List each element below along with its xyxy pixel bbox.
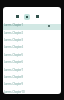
button[interactable]: Lorem - Chapter 2: [3, 29, 61, 36]
staticText: Lorem - Chapter 1: [4, 23, 23, 27]
staticText: Lorem - Chapter 5: [4, 53, 23, 57]
button[interactable]: Lorem - Chapter 6: [3, 58, 61, 65]
staticText: Lorem - Chapter 6: [4, 60, 23, 64]
button[interactable]: Lorem - Chapter 10: [3, 88, 61, 94]
staticText: Lorem - Chapter 9: [4, 82, 23, 86]
staticText: Lorem - Chapter 7: [4, 68, 23, 72]
button[interactable]: Books: [24, 14, 30, 20]
button[interactable]: Lorem - Chapter 5: [3, 51, 61, 58]
button[interactable]: Lorem - Chapter 8: [3, 73, 61, 80]
button[interactable]: Lorem - Chapter 9: [3, 80, 61, 87]
button[interactable]: Lorem - Chapter 7: [3, 66, 61, 73]
staticText: Lorem - Chapter 4: [4, 45, 23, 49]
staticText: Lorem - Chapter 2: [4, 31, 23, 35]
staticText: Lorem - Chapter 8: [4, 75, 23, 79]
button[interactable]: Lorem - Chapter 4: [3, 43, 61, 50]
button[interactable]: Lorem - Chapter 1: [3, 21, 61, 28]
button[interactable]: Lorem - Chapter 3: [3, 36, 61, 43]
staticText: Lorem - Chapter 10: [4, 90, 25, 94]
staticText: Lorem - Chapter 3: [4, 38, 23, 42]
